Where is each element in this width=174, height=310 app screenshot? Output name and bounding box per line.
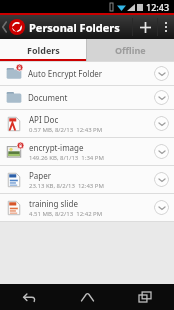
button[interactable]: More options: [158, 15, 174, 39]
button[interactable]: Up: [0, 15, 29, 39]
button[interactable]: Actions: [154, 90, 169, 105]
staticText: Paper: [29, 170, 52, 181]
other: Up: [2, 22, 7, 32]
staticText: Personal Folders: [29, 20, 132, 35]
button[interactable]: Paper: [0, 166, 174, 193]
staticText: Offline: [115, 44, 146, 56]
button[interactable]: Document: [0, 86, 174, 109]
staticText: 4.51 MB, 8/2/13 12:42 PM: [29, 210, 103, 218]
button[interactable]: Folders: [0, 39, 86, 61]
button[interactable]: Auto Encrypt Folder: [0, 62, 174, 85]
staticText: API Doc: [29, 114, 59, 125]
button[interactable]: Actions: [154, 116, 169, 131]
button[interactable]: API Doc: [0, 110, 174, 137]
staticText: 23.13 KB, 8/2/13 12:43 PM: [29, 182, 104, 190]
staticText: encrypt-image: [29, 142, 84, 153]
button[interactable]: Actions: [154, 172, 169, 187]
staticText: 149.26 KB, 8/1/13 1:34 PM: [29, 154, 104, 162]
staticText: Document: [28, 92, 154, 103]
staticText: 0.57 MB, 8/2/13 12:43 PM: [29, 126, 103, 134]
staticText: 12:43: [146, 1, 170, 13]
button[interactable]: Add: [133, 15, 157, 39]
button[interactable]: Offline: [87, 39, 174, 61]
staticText: Folders: [27, 44, 60, 56]
staticText: Auto Encrypt Folder: [28, 68, 154, 79]
button[interactable]: Back: [0, 284, 58, 310]
button[interactable]: encrypt-image: [0, 138, 174, 165]
button[interactable]: Actions: [154, 200, 169, 215]
staticText: training slide: [29, 198, 78, 209]
button[interactable]: Home: [58, 284, 116, 310]
button[interactable]: Recent apps: [116, 284, 174, 310]
button[interactable]: Actions: [154, 144, 169, 159]
button[interactable]: training slide: [0, 194, 174, 221]
button[interactable]: Actions: [154, 66, 169, 81]
